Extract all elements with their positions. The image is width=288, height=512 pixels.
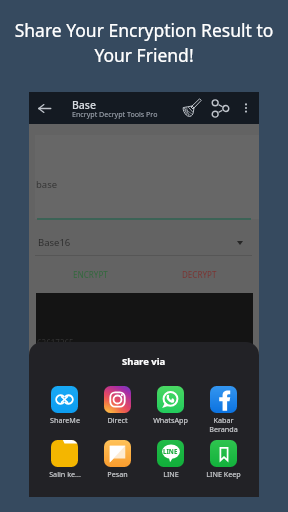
staticText: Salin ke... bbox=[49, 469, 81, 479]
staticText: LINE Keep bbox=[206, 469, 241, 479]
staticText: Kabar Beranda bbox=[209, 415, 238, 434]
button[interactable]: Pesan bbox=[91, 440, 144, 479]
button[interactable]: Salin ke... bbox=[38, 440, 91, 479]
staticText: 62617265 bbox=[37, 337, 74, 348]
button[interactable]: LINE bbox=[144, 440, 197, 479]
staticText: Direct bbox=[107, 415, 128, 425]
button[interactable]: Direct bbox=[91, 386, 144, 425]
staticText: Base16 bbox=[38, 236, 71, 249]
button[interactable]: More options bbox=[235, 92, 257, 124]
button[interactable]: ShareMe bbox=[38, 386, 91, 425]
button[interactable]: LINE Keep bbox=[197, 440, 250, 479]
staticText: ShareMe bbox=[50, 415, 80, 425]
staticText: base bbox=[36, 178, 58, 191]
staticText: Pesan bbox=[107, 469, 128, 479]
button[interactable]: Share bbox=[207, 92, 233, 124]
staticText: Encrypt Decrypt Tools Pro bbox=[72, 109, 158, 119]
staticText: WhatsApp bbox=[153, 415, 188, 425]
staticText: Share Your Encryption Result to Your Fri… bbox=[10, 18, 278, 67]
button[interactable]: Clear bbox=[179, 92, 205, 124]
staticText: LINE bbox=[163, 447, 178, 455]
button[interactable]: WhatsApp bbox=[144, 386, 197, 425]
button[interactable]: Navigate up bbox=[30, 92, 58, 124]
staticText: Share via bbox=[122, 355, 166, 368]
staticText: ENCRYPT bbox=[73, 269, 108, 280]
staticText: DECRYPT bbox=[182, 269, 217, 280]
staticText: Base bbox=[72, 98, 97, 112]
button[interactable]: Kabar Beranda bbox=[197, 386, 250, 434]
staticText: LINE bbox=[163, 469, 179, 479]
